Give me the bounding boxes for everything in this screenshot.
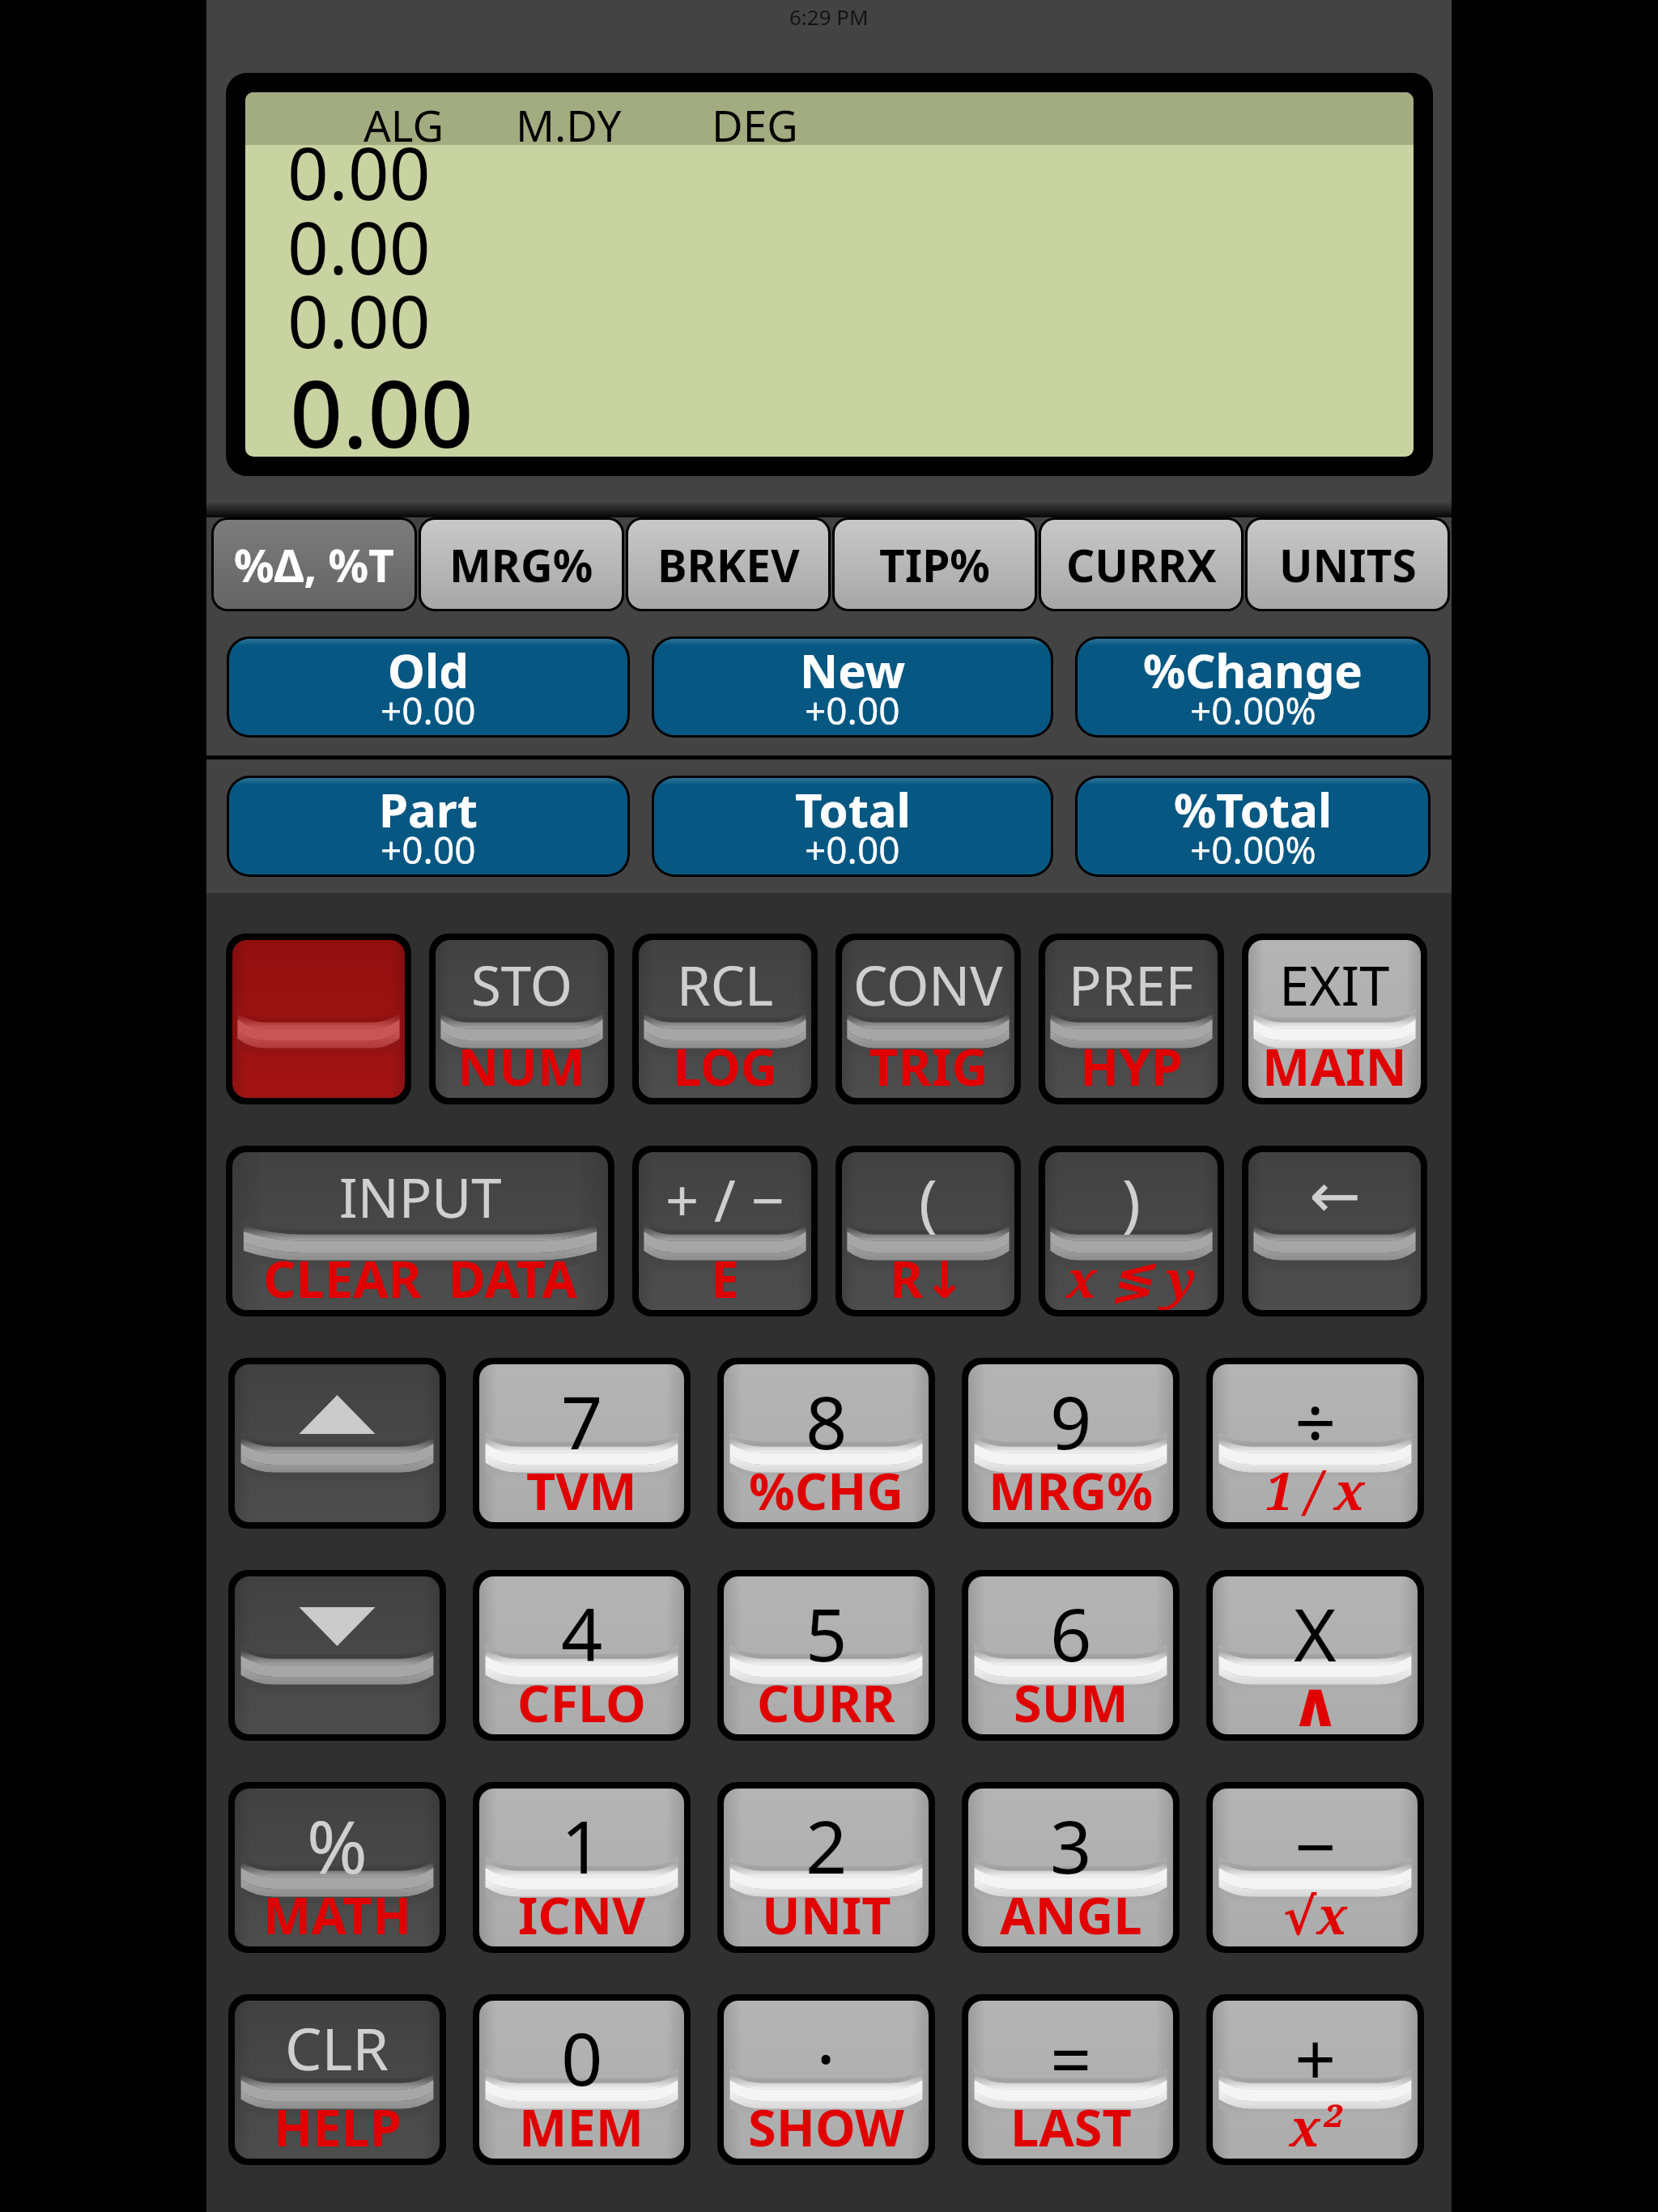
button[interactable]: ÷ bbox=[1213, 1364, 1418, 1522]
staticText: TVM bbox=[526, 1456, 637, 1522]
staticText: 0 bbox=[561, 2008, 603, 2108]
button[interactable]: RCL bbox=[639, 940, 811, 1098]
staticText: 1 / x bbox=[1265, 1456, 1366, 1522]
button[interactable]: %Δ, %T bbox=[214, 520, 414, 609]
button[interactable]: Total bbox=[654, 778, 1051, 874]
button[interactable]: 1 bbox=[479, 1789, 684, 1946]
staticText: = bbox=[1050, 2008, 1092, 2108]
staticText: UNIT bbox=[762, 1880, 891, 1946]
button[interactable]: %Change bbox=[1078, 639, 1428, 735]
button[interactable]: + / − bbox=[639, 1152, 811, 1310]
staticText: ÷ bbox=[1295, 1372, 1337, 1471]
staticText: % bbox=[307, 1796, 368, 1895]
staticText: LAST bbox=[1010, 2092, 1132, 2159]
staticText: MEM bbox=[519, 2092, 644, 2159]
button[interactable]: %Total bbox=[1078, 778, 1428, 874]
staticText: %CHG bbox=[749, 1456, 904, 1522]
staticText: CLEAR DATA bbox=[263, 1244, 578, 1310]
staticText: 1 bbox=[561, 1796, 603, 1895]
staticText: New bbox=[800, 639, 906, 702]
staticText: +0.00 bbox=[805, 824, 900, 874]
button[interactable]: Shift bbox=[232, 940, 405, 1098]
staticText: MRG% bbox=[988, 1456, 1154, 1522]
button[interactable]: INPUT bbox=[232, 1152, 608, 1310]
staticText: HELP bbox=[274, 2092, 402, 2159]
staticText: 0.00 bbox=[287, 123, 431, 221]
staticText: Part bbox=[379, 778, 478, 841]
button[interactable]: 3 bbox=[968, 1789, 1173, 1946]
staticText: CLR bbox=[285, 2008, 389, 2087]
staticText: %Total bbox=[1174, 778, 1333, 841]
staticText: 7 bbox=[561, 1372, 603, 1471]
button[interactable]: BRKEV bbox=[628, 520, 828, 609]
staticText: ANGL bbox=[1000, 1880, 1142, 1946]
staticText: ∧ bbox=[1290, 1668, 1341, 1734]
button[interactable]: New bbox=[654, 639, 1051, 735]
button[interactable]: CONV bbox=[842, 940, 1014, 1098]
button[interactable]: 4 bbox=[479, 1576, 684, 1734]
staticText: x² bbox=[1290, 2092, 1341, 2159]
staticText: 3 bbox=[1050, 1796, 1092, 1895]
staticText: NUM bbox=[457, 1032, 586, 1098]
staticText: X bbox=[1294, 1584, 1337, 1683]
staticText: EXIT bbox=[1279, 947, 1390, 1021]
staticText: +0.00% bbox=[1190, 824, 1316, 874]
staticText: TIP% bbox=[879, 534, 990, 595]
button[interactable]: CURRX bbox=[1041, 520, 1241, 609]
staticText: ← bbox=[1309, 1159, 1361, 1231]
button[interactable]: ) bbox=[1045, 1152, 1218, 1310]
button[interactable]: % bbox=[235, 1789, 440, 1946]
button[interactable]: Old bbox=[229, 639, 627, 735]
staticText: 6 bbox=[1050, 1584, 1092, 1683]
button[interactable]: 5 bbox=[724, 1576, 929, 1734]
button[interactable]: Scroll down bbox=[235, 1576, 440, 1734]
staticText: HYP bbox=[1080, 1032, 1183, 1098]
staticText: STO bbox=[471, 947, 573, 1021]
button[interactable]: − bbox=[1213, 1789, 1418, 1946]
staticText: CURRX bbox=[1066, 534, 1217, 595]
staticText: LOG bbox=[673, 1032, 778, 1098]
staticText: MATH bbox=[263, 1880, 412, 1946]
staticText: +0.00 bbox=[380, 824, 476, 874]
staticText: 0.00 bbox=[290, 349, 474, 457]
staticText: %Δ, %T bbox=[234, 534, 394, 595]
staticText: MAIN bbox=[1262, 1032, 1407, 1098]
staticText: 8 bbox=[806, 1372, 848, 1471]
button[interactable]: UNITS bbox=[1248, 520, 1448, 609]
staticText: MRG% bbox=[449, 534, 593, 595]
staticText: M.DY bbox=[516, 96, 622, 148]
staticText: 0.00 bbox=[287, 198, 431, 296]
button[interactable]: 7 bbox=[479, 1364, 684, 1522]
button[interactable]: Part bbox=[229, 778, 627, 874]
button[interactable]: 6 bbox=[968, 1576, 1173, 1734]
staticText: +0.00 bbox=[380, 685, 476, 735]
button[interactable]: 8 bbox=[724, 1364, 929, 1522]
staticText: INPUT bbox=[339, 1159, 502, 1233]
staticText: x ≶ y bbox=[1066, 1244, 1197, 1310]
staticText: R↓ bbox=[890, 1244, 967, 1310]
button[interactable]: X bbox=[1213, 1576, 1418, 1734]
button[interactable]: TIP% bbox=[835, 520, 1035, 609]
button[interactable]: Scroll up bbox=[235, 1364, 440, 1522]
button[interactable]: STO bbox=[436, 940, 608, 1098]
staticText: √x bbox=[1283, 1880, 1348, 1946]
button[interactable]: · bbox=[724, 2001, 929, 2159]
button[interactable]: PREF bbox=[1045, 940, 1218, 1098]
button[interactable]: 9 bbox=[968, 1364, 1173, 1522]
button[interactable]: + bbox=[1213, 2001, 1418, 2159]
button[interactable]: 0 bbox=[479, 2001, 684, 2159]
button[interactable]: = bbox=[968, 2001, 1173, 2159]
button[interactable]: Backspace bbox=[1248, 1152, 1421, 1310]
button[interactable]: EXIT bbox=[1248, 940, 1421, 1098]
staticText: 4 bbox=[561, 1584, 603, 1683]
button[interactable]: MRG% bbox=[421, 520, 622, 609]
button[interactable]: 2 bbox=[724, 1789, 929, 1946]
staticText: +0.00 bbox=[805, 685, 900, 735]
staticText: − bbox=[1295, 1796, 1337, 1895]
button[interactable]: CLR bbox=[235, 2001, 440, 2159]
button[interactable]: ( bbox=[842, 1152, 1014, 1310]
staticText: 9 bbox=[1050, 1372, 1092, 1471]
staticText: Old bbox=[388, 639, 469, 702]
staticText: 0.00 bbox=[287, 271, 431, 369]
staticText: E bbox=[711, 1244, 740, 1310]
